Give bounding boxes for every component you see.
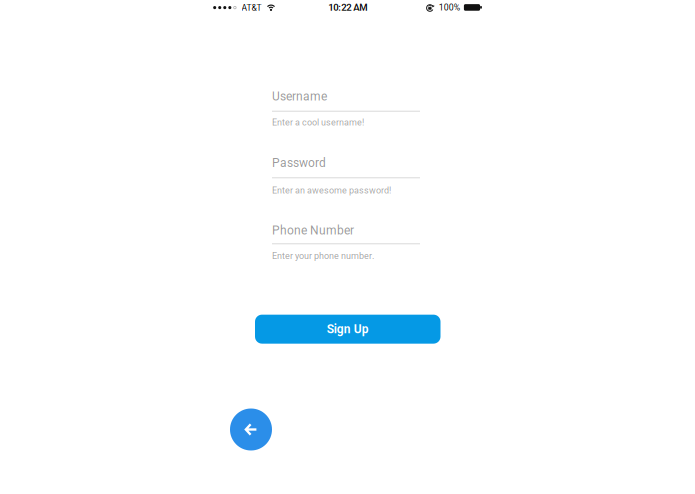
button[interactable]: Phone Number <box>272 222 420 244</box>
staticText: Enter an awesome password! <box>272 185 391 195</box>
button[interactable]: Password <box>272 156 420 178</box>
button[interactable]: Sign Up <box>255 315 440 344</box>
staticText: Enter your phone number. <box>272 251 374 261</box>
button[interactable]: Username <box>272 90 420 112</box>
staticText: Username <box>272 89 327 103</box>
staticText: AT&T <box>241 3 261 13</box>
staticText: Password <box>272 156 326 170</box>
staticText: Sign Up <box>327 322 369 336</box>
staticText: Enter a cool username! <box>272 117 364 128</box>
staticText: Phone Number <box>272 223 354 237</box>
button[interactable]: Back <box>230 408 272 450</box>
staticText: 100% <box>439 2 460 13</box>
staticText: 10:22 AM <box>328 2 367 13</box>
